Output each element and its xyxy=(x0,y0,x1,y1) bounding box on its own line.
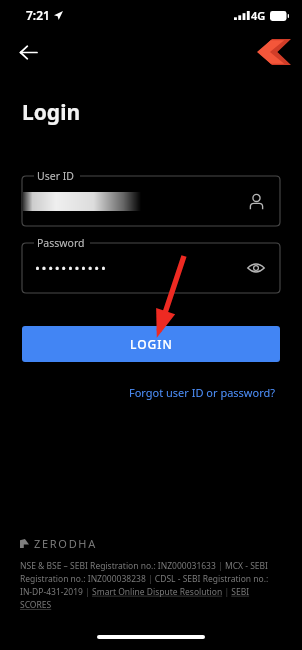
staticText: LOGIN xyxy=(130,336,173,352)
staticText: Forgot user ID or password? xyxy=(129,385,276,400)
button[interactable]: Choose user xyxy=(241,186,271,216)
staticText: Login xyxy=(22,98,81,127)
staticText: 7:21 xyxy=(26,7,50,23)
button[interactable]: Back xyxy=(8,32,48,72)
staticText: Password xyxy=(37,236,85,250)
button[interactable]: LOGIN xyxy=(22,326,280,362)
staticText: ZERODHA xyxy=(34,536,97,551)
button[interactable]: Forgot user ID or password? xyxy=(125,381,280,404)
staticText: 4G xyxy=(251,8,266,23)
staticText: NSE & BSE – SEBI Registration no.: INZ00… xyxy=(20,560,282,611)
button[interactable]: Show password xyxy=(241,253,271,283)
button[interactable]: Zerodha xyxy=(250,34,298,70)
staticText: User ID xyxy=(37,169,74,183)
staticText: ••••••••••• xyxy=(35,259,108,277)
